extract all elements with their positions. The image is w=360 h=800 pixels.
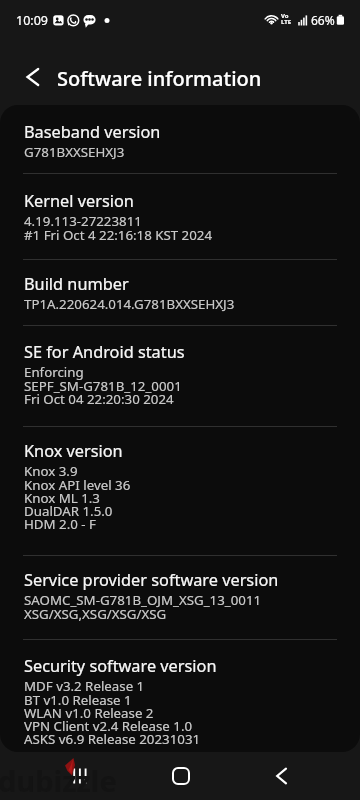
button[interactable]: Baseband version [0,105,360,173]
button[interactable]: Build number [0,260,360,325]
staticText: Knox version [24,440,123,462]
button[interactable]: Knox version [0,427,360,555]
button[interactable]: Back [260,754,304,798]
staticText: G781BXXSEHXJ3 [24,143,125,161]
button[interactable]: Security software version [0,640,360,752]
button[interactable]: Kernel version [0,174,360,259]
staticText: SAOMC_SM-G781B_OJM_XSG_13_0011 XSG/XSG,X… [24,591,262,622]
staticText: Enforcing SEPF_SM-G781B_12_0001 Fri Oct … [24,363,182,407]
button[interactable]: SE for Android status [0,326,360,426]
staticText: TP1A.220624.014.G781BXXSEHXJ3 [24,295,235,313]
staticText: Build number [24,273,129,295]
button[interactable]: Back [14,57,54,97]
staticText: dubizzle [0,761,117,800]
staticText: Vo [281,12,289,20]
button[interactable]: Service provider software version [0,556,360,639]
staticText: 4.19.113-27223811 #1 Fri Oct 4 22:16:18 … [24,212,213,243]
staticText: Knox 3.9 Knox API level 36 Knox ML 1.3 D… [24,462,131,532]
staticText: LTE [281,18,292,26]
staticText: 10:09 [16,12,48,29]
button[interactable]: Recent apps [58,754,102,798]
staticText: Software information [57,65,262,92]
staticText: MDF v3.2 Release 1 BT v1.0 Release 1 WLA… [24,677,201,747]
button[interactable]: Home [159,754,203,798]
staticText: SE for Android status [24,341,185,363]
staticText: Security software version [24,655,217,677]
staticText: Kernel version [24,190,134,212]
staticText: Baseband version [24,121,161,143]
staticText: Service provider software version [24,569,279,591]
staticText: 66% [311,12,335,28]
